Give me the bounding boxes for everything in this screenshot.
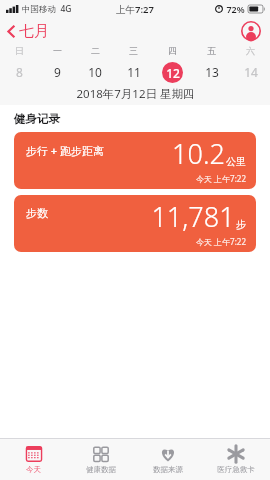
button[interactable]: 8 xyxy=(0,61,38,83)
staticText: 步 xyxy=(236,218,246,231)
staticText: 14 xyxy=(244,64,258,80)
button[interactable]: 12 xyxy=(153,61,192,83)
button[interactable]: 医疗急救卡 xyxy=(202,439,270,480)
staticText: 2018年7月12日 星期四 xyxy=(76,86,195,102)
staticText: 日 xyxy=(15,45,24,56)
staticText: 今天 上午7:22 xyxy=(196,173,246,184)
staticText: 三 xyxy=(129,45,138,56)
button[interactable]: 11 xyxy=(114,61,153,83)
staticText: 上午7:27 xyxy=(116,3,154,16)
staticText: 五 xyxy=(207,45,216,56)
staticText: 10 xyxy=(88,64,102,80)
staticText: 步行 + 跑步距离 xyxy=(26,143,105,158)
button[interactable]: 数据来源 xyxy=(134,439,202,480)
staticText: 七月 xyxy=(19,22,49,41)
button[interactable]: 14 xyxy=(231,61,270,83)
staticText: 公里 xyxy=(226,155,246,168)
staticText: 11 xyxy=(127,64,141,80)
staticText: 今天 xyxy=(26,465,41,474)
button[interactable]: 9 xyxy=(38,61,76,83)
staticText: 4G xyxy=(60,3,72,15)
button[interactable]: 步数 xyxy=(14,195,256,252)
staticText: 13 xyxy=(205,64,219,80)
staticText: 9 xyxy=(54,64,61,80)
staticText: 六 xyxy=(246,45,255,56)
button[interactable]: 步行 + 跑步距离 xyxy=(14,132,256,189)
staticText: 今天 上午7:22 xyxy=(196,236,246,247)
staticText: 中国移动 xyxy=(22,4,56,15)
button[interactable]: 七月 xyxy=(0,20,57,43)
staticText: 12 xyxy=(166,65,180,81)
button[interactable]: Profile xyxy=(241,21,261,41)
button[interactable]: 13 xyxy=(192,61,231,83)
staticText: 数据来源 xyxy=(153,465,183,474)
staticText: 二 xyxy=(91,45,100,56)
staticText: 四 xyxy=(168,45,177,56)
staticText: 8 xyxy=(16,64,23,80)
staticText: 72% xyxy=(226,3,245,15)
staticText: 11,781 xyxy=(151,198,235,235)
staticText: 健康数据 xyxy=(86,465,116,474)
staticText: 医疗急救卡 xyxy=(217,465,255,474)
staticText: 步数 xyxy=(26,206,48,220)
button[interactable]: 今天 xyxy=(0,439,67,480)
button[interactable]: 10 xyxy=(76,61,114,83)
staticText: 10.2 xyxy=(172,135,225,172)
staticText: 一 xyxy=(53,45,62,56)
staticText: 健身记录 xyxy=(14,112,60,126)
button[interactable]: 健康数据 xyxy=(67,439,134,480)
